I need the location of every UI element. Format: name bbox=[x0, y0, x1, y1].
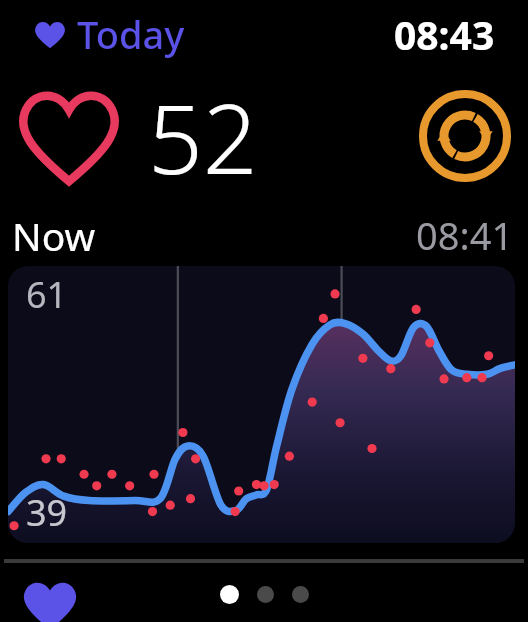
staticText: Today bbox=[77, 8, 185, 60]
button[interactable]: Now bbox=[0, 204, 528, 266]
staticText: Now bbox=[12, 209, 96, 262]
button[interactable]: 52 bbox=[0, 68, 528, 204]
other: Heart rate app bbox=[34, 20, 66, 49]
button[interactable]: Heart rate app bbox=[0, 0, 528, 68]
button[interactable]: 61 bbox=[8, 266, 515, 543]
staticText: 61 bbox=[26, 270, 68, 319]
staticText: 08:41 bbox=[416, 209, 514, 261]
staticText: 52 bbox=[148, 71, 258, 202]
button[interactable]: Refresh bbox=[418, 89, 512, 183]
staticText: 39 bbox=[26, 488, 68, 537]
staticText: 08:43 bbox=[394, 8, 495, 61]
